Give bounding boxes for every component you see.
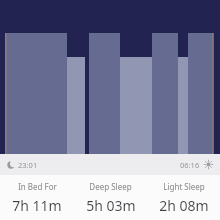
staticText: 7h 11m xyxy=(12,196,62,215)
button[interactable]: Bedtime xyxy=(7,154,213,175)
other: Bedtime xyxy=(7,161,15,169)
staticText: Deep Sleep xyxy=(89,181,132,192)
staticText: In Bed For xyxy=(18,181,57,192)
button[interactable]: In Bed For xyxy=(0,175,74,220)
staticText: Light Sleep xyxy=(163,181,205,192)
staticText: 5h 03m xyxy=(86,196,136,215)
other: Wake time xyxy=(204,160,213,169)
button[interactable]: Light Sleep xyxy=(147,175,220,220)
staticText: 06:16 xyxy=(180,160,200,170)
staticText: 2h 08m xyxy=(159,196,209,215)
button[interactable]: Deep Sleep xyxy=(74,175,147,220)
staticText: 23:01 xyxy=(18,160,38,170)
button[interactable] xyxy=(0,0,220,154)
